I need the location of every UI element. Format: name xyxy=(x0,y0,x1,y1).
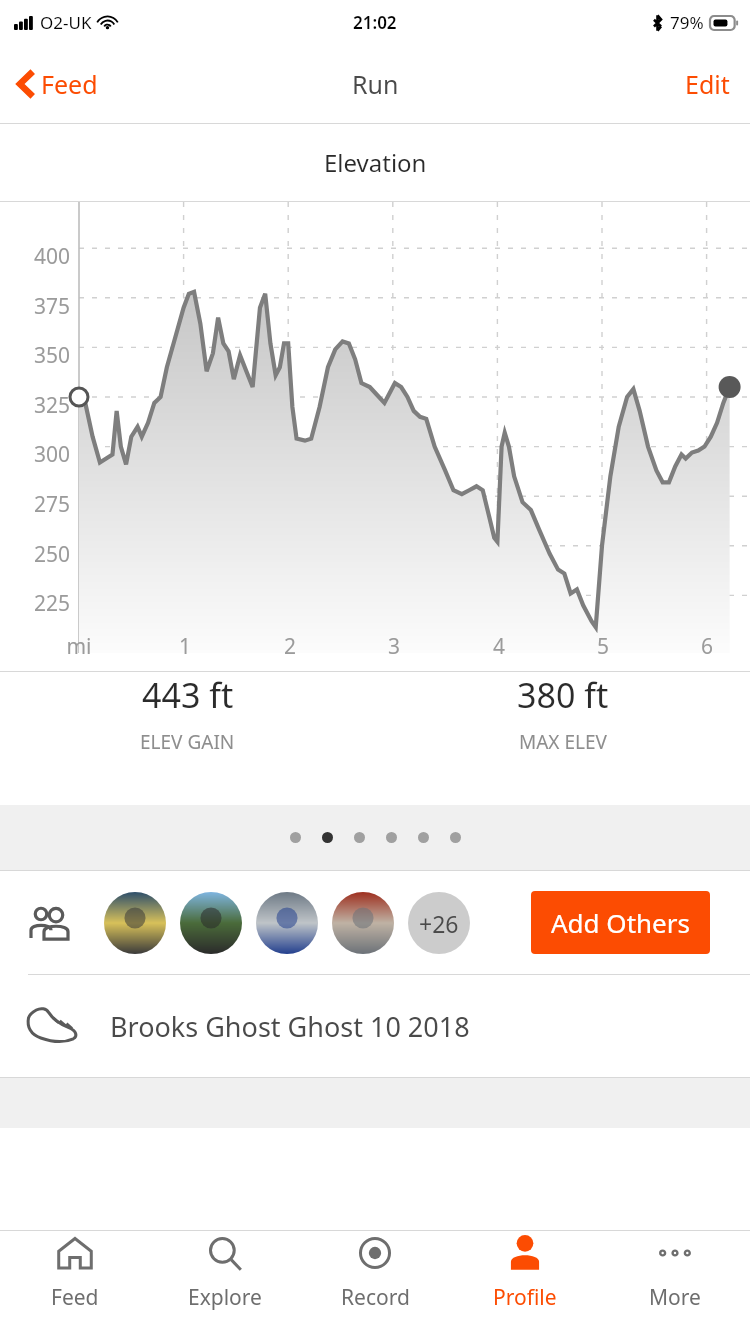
staticText: 325 xyxy=(18,391,70,420)
staticText: Explore xyxy=(188,1283,262,1312)
staticText: 250 xyxy=(18,540,70,569)
staticText: 350 xyxy=(18,341,70,370)
staticText: Record xyxy=(341,1283,410,1312)
button[interactable]: Explore xyxy=(150,1231,300,1312)
button[interactable]: Brooks Ghost Ghost 10 2018 xyxy=(0,975,750,1077)
button[interactable]: More xyxy=(600,1231,750,1312)
staticText: 443 ft xyxy=(142,672,234,718)
staticText: 1 xyxy=(155,632,215,661)
button[interactable]: Athlete xyxy=(256,892,318,954)
staticText: Add Others xyxy=(551,905,690,940)
button[interactable]: Profile xyxy=(450,1231,600,1312)
button[interactable]: 380 ft xyxy=(375,672,750,755)
staticText: Profile xyxy=(493,1283,557,1312)
button[interactable]: Record xyxy=(300,1231,450,1312)
staticText: 5 xyxy=(573,632,633,661)
staticText: Feed xyxy=(41,67,98,101)
button[interactable]: Athlete xyxy=(180,892,242,954)
staticText: 400 xyxy=(18,242,70,271)
button[interactable]: Edit xyxy=(677,61,738,107)
button[interactable]: 443 ft xyxy=(0,672,375,755)
button[interactable]: Athlete xyxy=(104,892,166,954)
staticText: 300 xyxy=(18,440,70,469)
staticText: 380 ft xyxy=(517,672,609,718)
staticText: Brooks Ghost Ghost 10 2018 xyxy=(110,1008,470,1045)
staticText: 6 xyxy=(677,632,737,661)
staticText: 275 xyxy=(18,490,70,519)
staticText: Edit xyxy=(685,67,730,101)
other: Athletes xyxy=(26,905,76,941)
button[interactable]: +26 xyxy=(408,892,470,954)
staticText: 3 xyxy=(364,632,424,661)
staticText: 375 xyxy=(18,292,70,321)
button[interactable]: Feed xyxy=(10,61,106,107)
staticText: MAX ELEV xyxy=(519,729,607,755)
button[interactable]: Add Others xyxy=(531,891,710,954)
staticText: 225 xyxy=(18,589,70,618)
staticText: Elevation xyxy=(324,146,427,179)
staticText: O2-UK xyxy=(40,11,92,34)
staticText: 21:02 xyxy=(353,11,397,34)
staticText: 79% xyxy=(670,11,704,34)
staticText: +26 xyxy=(419,908,459,939)
button[interactable]: Feed xyxy=(0,1231,150,1312)
staticText: ELEV GAIN xyxy=(140,729,235,755)
staticText: 2 xyxy=(260,632,320,661)
staticText: Run xyxy=(352,67,399,101)
staticText: Feed xyxy=(51,1283,99,1312)
staticText: More xyxy=(649,1283,701,1312)
staticText: mi xyxy=(49,632,109,661)
button[interactable]: Athlete xyxy=(332,892,394,954)
staticText: 4 xyxy=(469,632,529,661)
